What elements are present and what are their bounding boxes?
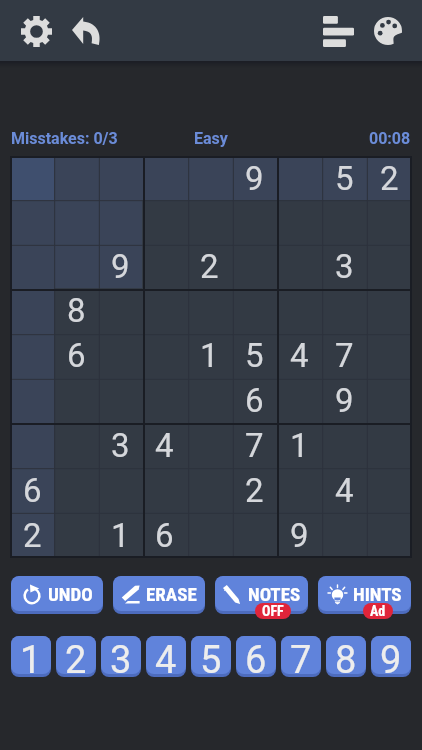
button[interactable]: 6 <box>10 468 54 513</box>
button[interactable] <box>367 423 412 468</box>
button[interactable] <box>142 156 187 200</box>
button[interactable] <box>277 244 322 288</box>
button[interactable] <box>10 333 54 378</box>
button[interactable] <box>367 200 412 244</box>
button[interactable]: 7 <box>281 636 321 677</box>
button[interactable] <box>10 156 54 200</box>
button[interactable]: HINTS <box>318 576 411 614</box>
button[interactable] <box>277 468 322 513</box>
button[interactable] <box>277 288 322 333</box>
button[interactable] <box>322 513 367 558</box>
button[interactable] <box>10 378 54 423</box>
button[interactable]: 3 <box>101 636 141 677</box>
button[interactable]: 3 <box>98 423 142 468</box>
button[interactable]: 1 <box>11 636 51 677</box>
button[interactable] <box>98 200 142 244</box>
button[interactable]: 7 <box>322 333 367 378</box>
button[interactable] <box>187 423 232 468</box>
button[interactable]: Settings <box>12 7 60 55</box>
button[interactable]: 4 <box>322 468 367 513</box>
button[interactable] <box>277 200 322 244</box>
button[interactable]: 1 <box>98 513 142 558</box>
button[interactable] <box>367 378 412 423</box>
button[interactable] <box>367 468 412 513</box>
button[interactable] <box>142 333 187 378</box>
button[interactable]: 3 <box>322 244 367 288</box>
button[interactable]: Statistics <box>314 7 362 55</box>
button[interactable]: 1 <box>277 423 322 468</box>
button[interactable]: 9 <box>98 244 142 288</box>
button[interactable]: 2 <box>10 513 54 558</box>
button[interactable] <box>98 156 142 200</box>
button[interactable]: 6 <box>236 636 276 677</box>
button[interactable] <box>10 288 54 333</box>
button[interactable]: 6 <box>232 378 277 423</box>
button[interactable]: 9 <box>371 636 411 677</box>
button[interactable]: 2 <box>367 156 412 200</box>
button[interactable] <box>367 244 412 288</box>
button[interactable] <box>142 200 187 244</box>
button[interactable]: 4 <box>277 333 322 378</box>
button[interactable] <box>10 244 54 288</box>
button[interactable]: 8 <box>54 288 98 333</box>
button[interactable] <box>367 513 412 558</box>
button[interactable] <box>98 288 142 333</box>
button[interactable] <box>187 156 232 200</box>
button[interactable] <box>10 200 54 244</box>
button[interactable] <box>277 156 322 200</box>
button[interactable] <box>142 288 187 333</box>
button[interactable]: UNDO <box>11 576 103 614</box>
button[interactable]: 4 <box>142 423 187 468</box>
button[interactable] <box>187 513 232 558</box>
button[interactable] <box>322 288 367 333</box>
button[interactable]: 9 <box>277 513 322 558</box>
button[interactable]: 2 <box>56 636 96 677</box>
button[interactable] <box>232 288 277 333</box>
button[interactable]: NOTES <box>215 576 308 614</box>
button[interactable] <box>54 513 98 558</box>
button[interactable] <box>367 288 412 333</box>
button[interactable] <box>322 423 367 468</box>
button[interactable]: 5 <box>191 636 231 677</box>
button[interactable] <box>142 244 187 288</box>
button[interactable]: Theme <box>364 7 412 55</box>
staticText: 9 <box>335 381 354 420</box>
button[interactable] <box>54 200 98 244</box>
button[interactable]: 8 <box>326 636 366 677</box>
button[interactable]: Undo <box>62 7 110 55</box>
button[interactable] <box>10 423 54 468</box>
button[interactable] <box>54 156 98 200</box>
button[interactable]: 2 <box>187 244 232 288</box>
button[interactable] <box>277 378 322 423</box>
button[interactable]: 4 <box>146 636 186 677</box>
button[interactable]: 7 <box>232 423 277 468</box>
button[interactable]: 9 <box>232 156 277 200</box>
button[interactable]: ERASE <box>113 576 205 614</box>
button[interactable]: 6 <box>54 333 98 378</box>
staticText: 9 <box>380 638 402 679</box>
button[interactable]: 5 <box>232 333 277 378</box>
button[interactable] <box>142 378 187 423</box>
button[interactable] <box>187 288 232 333</box>
button[interactable]: 6 <box>142 513 187 558</box>
button[interactable]: 9 <box>322 378 367 423</box>
button[interactable]: 1 <box>187 333 232 378</box>
button[interactable] <box>142 468 187 513</box>
button[interactable] <box>367 333 412 378</box>
button[interactable] <box>54 423 98 468</box>
button[interactable] <box>232 513 277 558</box>
button[interactable]: 5 <box>322 156 367 200</box>
button[interactable] <box>54 244 98 288</box>
button[interactable]: 2 <box>232 468 277 513</box>
